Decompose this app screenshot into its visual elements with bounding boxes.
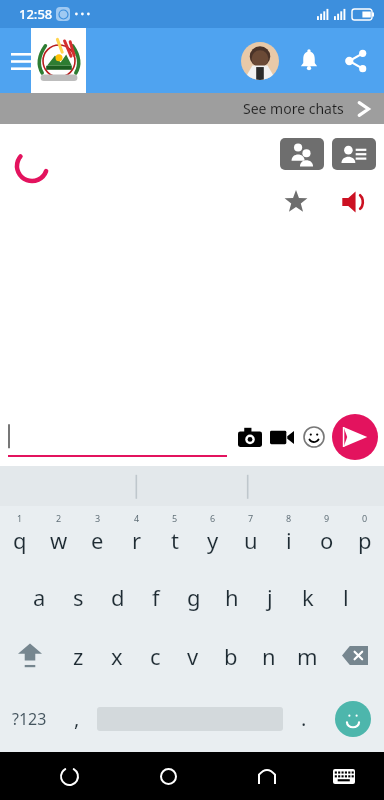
button[interactable]: b (212, 626, 250, 685)
button[interactable]: Keyboard (322, 754, 366, 798)
staticText: ?123 (12, 708, 47, 730)
button[interactable]: h (213, 567, 251, 626)
staticText: g (187, 582, 201, 612)
button[interactable]: k (289, 567, 327, 626)
button[interactable]: Home (146, 754, 190, 798)
staticText: m (297, 641, 318, 671)
staticText: l (343, 582, 349, 612)
button[interactable]: Notifications (289, 41, 329, 81)
button[interactable]: 3 (78, 506, 117, 567)
button[interactable]: d (98, 567, 137, 626)
button[interactable]: Sound (332, 180, 376, 224)
button[interactable]: 0 (346, 506, 384, 567)
staticText: n (262, 641, 276, 671)
button[interactable]: Emoji (299, 422, 329, 452)
button[interactable]: Back (47, 754, 91, 798)
staticText: x (111, 641, 123, 671)
button[interactable]: z (59, 626, 98, 685)
staticText: 6 (210, 512, 216, 524)
button[interactable]: c (136, 626, 174, 685)
staticText: e (91, 525, 104, 555)
staticText: 4 (134, 512, 140, 524)
staticText: f (152, 582, 160, 612)
button[interactable]: 7 (232, 506, 270, 567)
button[interactable]: Shift (0, 626, 59, 685)
staticText: 7 (248, 512, 254, 524)
button[interactable]: f (137, 567, 175, 626)
staticText: r (132, 525, 142, 555)
button[interactable]: . (285, 685, 322, 752)
staticText: w (50, 525, 68, 555)
staticText: j (267, 582, 273, 612)
button[interactable]: 5 (156, 506, 194, 567)
staticText: 2 (56, 512, 62, 524)
button[interactable]: l (327, 567, 365, 626)
staticText: , (74, 705, 80, 732)
staticText: v (187, 641, 199, 671)
staticText: k (302, 582, 314, 612)
button[interactable]: m (288, 626, 326, 685)
staticText: u (244, 525, 258, 555)
button[interactable]: Backspace (326, 626, 384, 685)
staticText: h (225, 582, 239, 612)
button[interactable]: 4 (117, 506, 156, 567)
button[interactable]: x (98, 626, 136, 685)
staticText: 5 (172, 512, 178, 524)
button[interactable] (8, 417, 231, 457)
staticText: s (73, 582, 84, 612)
staticText: a (33, 582, 46, 612)
staticText: 9 (324, 512, 330, 524)
button[interactable]: Camera (235, 422, 265, 452)
button[interactable]: Menu (4, 43, 40, 79)
staticText: d (111, 582, 125, 612)
button[interactable]: , (58, 685, 95, 752)
button[interactable]: 6 (194, 506, 232, 567)
button[interactable]: Profile (240, 41, 280, 81)
staticText: c (150, 641, 161, 671)
button[interactable]: Recents (245, 754, 289, 798)
staticText: p (358, 525, 372, 555)
button[interactable]: 9 (308, 506, 346, 567)
staticText: o (320, 525, 334, 555)
staticText: . (301, 705, 307, 732)
staticText: b (224, 641, 238, 671)
staticText: See more chats (243, 99, 344, 118)
staticText: 0 (362, 512, 368, 524)
button[interactable]: 2 (39, 506, 78, 567)
staticText: y (207, 525, 219, 555)
button[interactable]: Send (332, 414, 378, 460)
button[interactable]: ?123 (0, 685, 58, 752)
button[interactable]: Contact card (332, 138, 376, 170)
staticText: z (73, 641, 84, 671)
button[interactable]: Video (267, 422, 297, 452)
staticText: q (13, 525, 27, 555)
button[interactable]: 1 (0, 506, 39, 567)
staticText: i (286, 525, 292, 555)
button[interactable]: Logo (31, 28, 86, 93)
staticText: t (171, 525, 179, 555)
button[interactable]: Group members (280, 138, 324, 170)
button[interactable]: Share (336, 41, 376, 81)
button[interactable]: Favourite (274, 180, 318, 224)
button[interactable]: j (251, 567, 289, 626)
staticText: 12:58 (19, 5, 53, 23)
button[interactable]: Emoji keyboard (335, 701, 371, 737)
staticText: 1 (17, 512, 23, 524)
button[interactable]: s (59, 567, 98, 626)
button[interactable]: g (175, 567, 213, 626)
button[interactable]: 8 (270, 506, 308, 567)
staticText: 3 (95, 512, 101, 524)
button[interactable]: a (20, 567, 59, 626)
button[interactable]: n (250, 626, 288, 685)
staticText: 8 (286, 512, 292, 524)
button[interactable]: See more chats (0, 93, 384, 124)
button[interactable]: v (174, 626, 212, 685)
